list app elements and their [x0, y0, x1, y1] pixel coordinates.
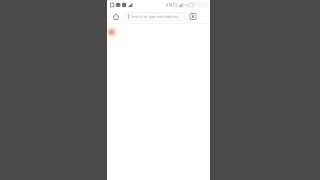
staticText: Search or type web address [131, 14, 179, 19]
staticText: 17:10 [195, 1, 208, 8]
button[interactable]: Tabs [186, 10, 200, 23]
button[interactable]: Search or type web address [125, 12, 186, 20]
button[interactable]: Home [107, 10, 125, 23]
